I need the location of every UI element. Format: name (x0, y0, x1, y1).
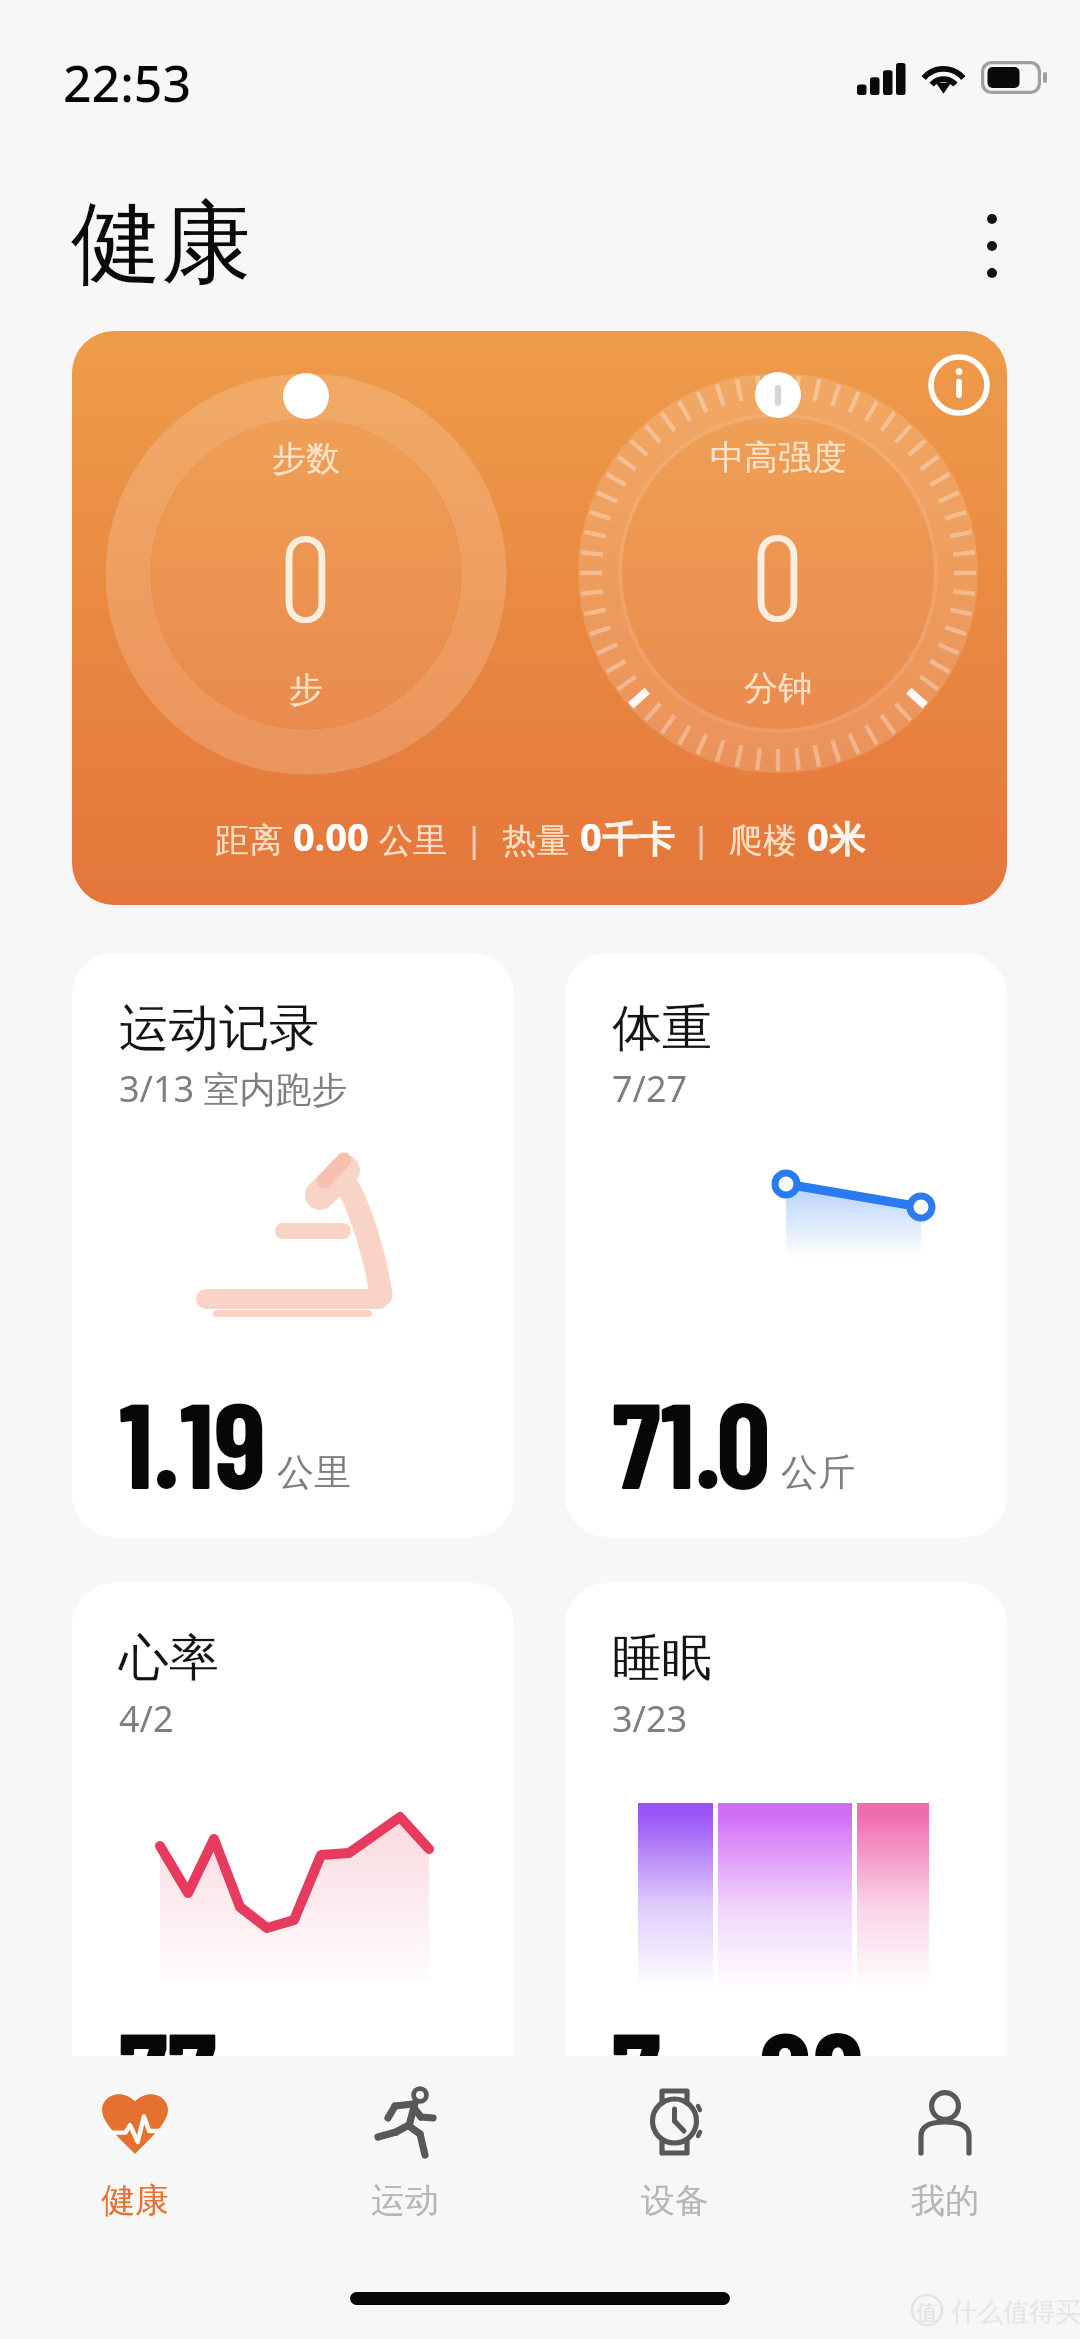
staticText: 71.0 (612, 1369, 771, 1513)
staticText: 健康 (71, 187, 251, 300)
button[interactable]: More options (960, 214, 1024, 278)
staticText: 小时 (669, 2079, 743, 2126)
staticText: 0 (797, 810, 829, 862)
staticText: 什么值得买 (951, 2296, 1080, 2329)
staticText: 步 (289, 668, 323, 711)
staticText: 米 (829, 817, 865, 862)
staticText: 健康 (101, 2179, 169, 2222)
staticText: 分钟 (744, 667, 812, 710)
button[interactable]: 体重 (565, 953, 1007, 1537)
button[interactable]: 步数 (72, 331, 1007, 905)
staticText: 体重 (612, 997, 712, 1060)
staticText: 公里 (379, 819, 447, 862)
staticText: 0 (279, 502, 333, 646)
staticText: 3/13 室内跑步 (119, 1064, 348, 1113)
staticText: 1.19 (119, 1369, 267, 1513)
staticText: 0 (570, 810, 602, 862)
staticText: 心率 (119, 1627, 219, 1690)
staticText: 4/2 (119, 1694, 174, 1743)
staticText: | (674, 816, 729, 862)
button[interactable]: 我的 (855, 2080, 1035, 2260)
staticText: 0 (751, 501, 805, 645)
staticText: 值 (916, 2299, 938, 2327)
staticText: 热量 (502, 819, 570, 862)
staticText: 公斤 (781, 1449, 855, 1496)
button[interactable]: 设备 (585, 2080, 765, 2260)
button[interactable]: 健康 (45, 2080, 225, 2260)
staticText: 分钟 (873, 2079, 947, 2126)
staticText: 77 (119, 1999, 217, 2143)
button[interactable]: Info (923, 349, 995, 421)
staticText: 步数 (272, 437, 340, 480)
staticText: 距离 (215, 819, 283, 862)
staticText: 22:53 (63, 49, 191, 117)
staticText: 中高强度 (710, 436, 846, 479)
button[interactable]: 运动记录 (72, 953, 514, 1537)
staticText: 睡眠 (612, 1627, 712, 1690)
button[interactable]: 睡眠 (565, 1583, 1007, 2167)
button[interactable]: 运动 (315, 2080, 495, 2260)
staticText: 设备 (641, 2179, 709, 2222)
staticText: 爬楼 (729, 819, 797, 862)
staticText: | (447, 816, 502, 862)
staticText: 运动记录 (119, 997, 319, 1060)
staticText: 28 (759, 1999, 865, 2143)
staticText: 0.00 (283, 810, 379, 862)
staticText: 运动 (371, 2179, 439, 2222)
staticText: 7 (612, 1999, 661, 2143)
staticText: 7/27 (612, 1064, 688, 1113)
staticText: 3/23 (612, 1694, 688, 1743)
button[interactable]: 心率 (72, 1583, 514, 2167)
staticText: 我的 (911, 2179, 979, 2222)
staticText: 公里 (277, 1449, 351, 1496)
staticText: 千卡 (602, 817, 674, 862)
